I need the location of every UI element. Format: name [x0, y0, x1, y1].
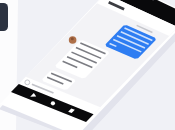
button[interactable]: Messages conversation on a phone [0, 0, 175, 130]
